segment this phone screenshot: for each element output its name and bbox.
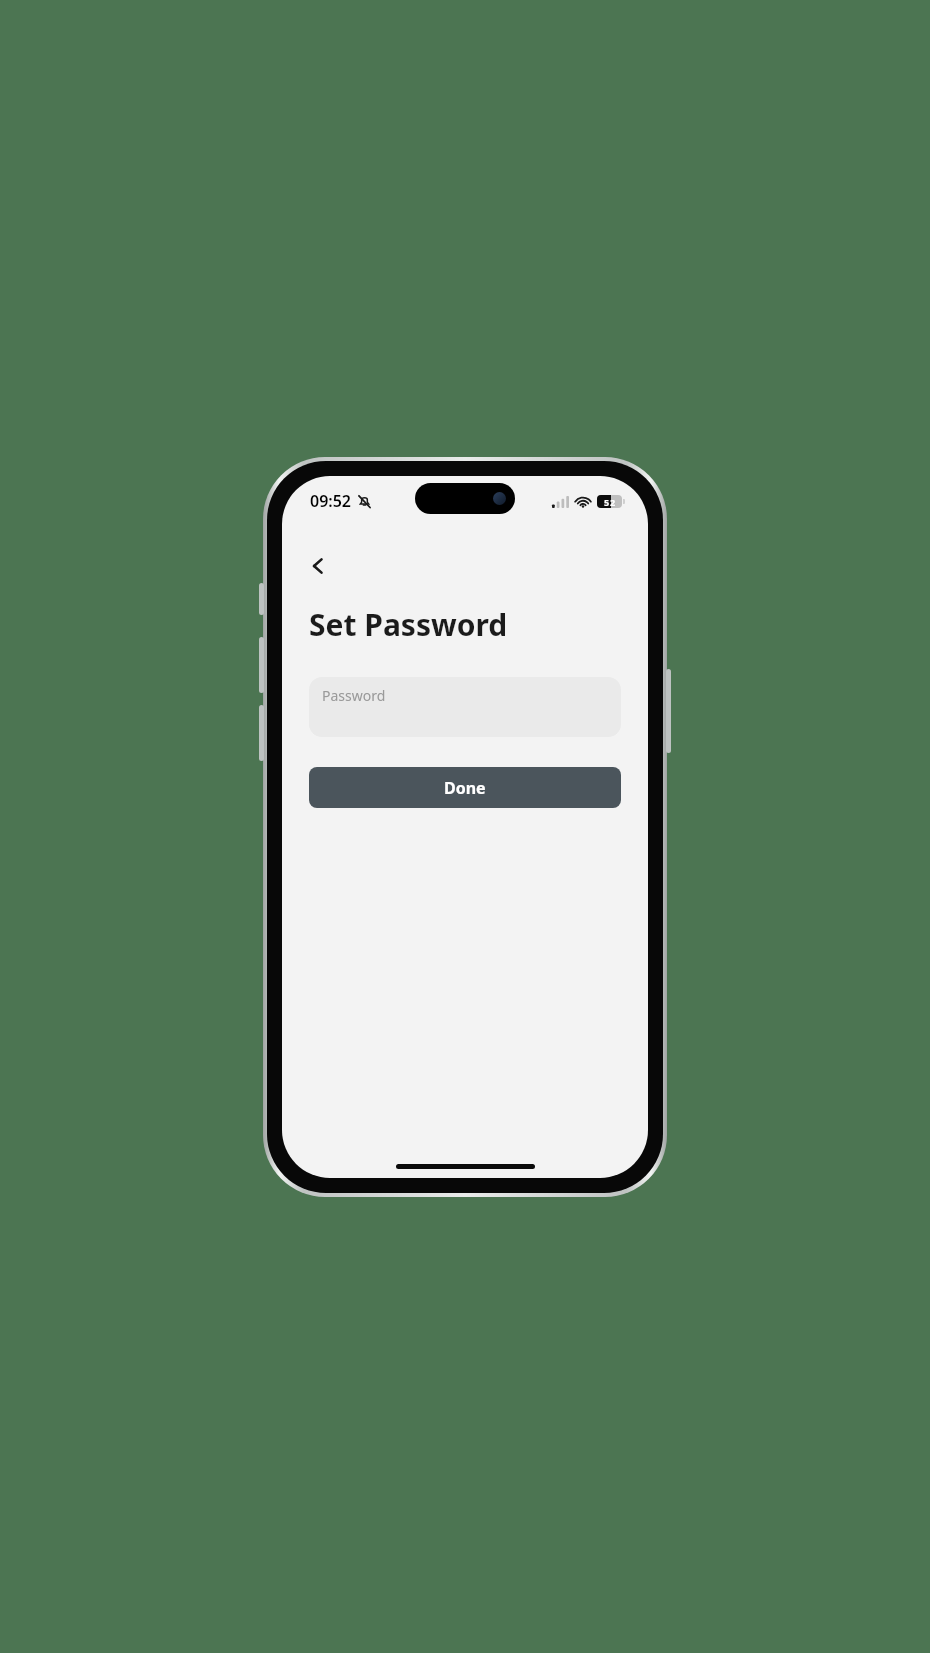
- staticText: Done: [444, 777, 486, 799]
- button[interactable]: Done: [309, 767, 621, 808]
- button[interactable]: Back: [296, 544, 340, 588]
- staticText: 5: [604, 496, 610, 508]
- staticText: 2: [610, 496, 616, 508]
- staticText: 09:52: [310, 490, 352, 512]
- button[interactable]: Password: [309, 677, 621, 737]
- staticText: Set Password: [309, 604, 508, 645]
- staticText: Password: [322, 686, 386, 705]
